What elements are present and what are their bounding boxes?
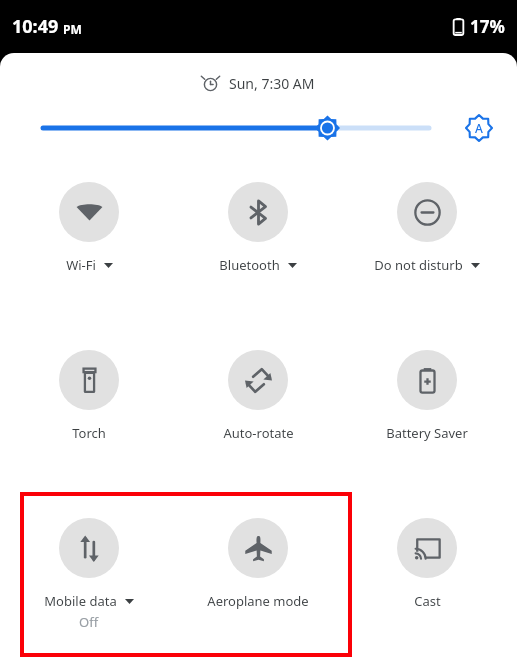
- staticText: Do not disturb: [374, 256, 463, 274]
- button[interactable]: Mobile data: [11, 518, 167, 631]
- button[interactable]: Battery Saver: [349, 350, 505, 442]
- staticText: Mobile data: [44, 592, 117, 610]
- button[interactable]: Do not disturb: [349, 182, 505, 274]
- staticText: Wi-Fi: [66, 256, 96, 274]
- staticText: Auto-rotate: [223, 424, 294, 442]
- button[interactable]: Auto brightness: [460, 109, 498, 147]
- button[interactable]: Torch: [11, 350, 167, 442]
- staticText: Torch: [72, 424, 106, 442]
- staticText: PM: [63, 21, 82, 37]
- staticText: 10:49: [12, 14, 59, 39]
- button[interactable]: Auto-rotate: [180, 350, 336, 442]
- staticText: 17%: [470, 15, 505, 38]
- staticText: Bluetooth: [219, 256, 280, 274]
- staticText: Battery Saver: [386, 424, 468, 442]
- staticText: Sun, 7:30 AM: [229, 74, 315, 93]
- button[interactable]: Wi-Fi: [11, 182, 167, 274]
- staticText: Off: [79, 613, 99, 631]
- button[interactable]: Bluetooth: [180, 182, 336, 274]
- staticText: A: [475, 120, 483, 136]
- staticText: Aeroplane mode: [207, 592, 309, 610]
- button[interactable]: Cast: [349, 518, 505, 610]
- button[interactable]: Aeroplane mode: [180, 518, 336, 610]
- staticText: Cast: [414, 592, 441, 610]
